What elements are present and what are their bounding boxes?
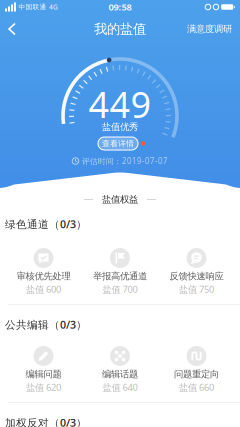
staticText: 举报高优通道 xyxy=(93,270,147,282)
staticText: 盐值优秀 xyxy=(102,121,138,133)
button[interactable]: 审核优先处理 xyxy=(5,248,82,295)
button[interactable]: 满意度调研 xyxy=(187,23,240,35)
staticText: 满意度调研 xyxy=(187,23,232,35)
staticText: 盐值 750 xyxy=(179,283,214,295)
staticText: 加权反对（0/3） xyxy=(5,415,87,427)
staticText: 公共编辑（0/3） xyxy=(5,317,87,332)
staticText: 编辑问题 xyxy=(25,368,61,380)
staticText: 09:58 xyxy=(108,1,131,13)
staticText: 449 xyxy=(88,80,151,128)
staticText: 盐值 640 xyxy=(102,381,137,393)
staticText: 中国联通 xyxy=(18,3,46,11)
staticText: 盐值权益 xyxy=(102,194,138,205)
staticText: 问题重定向 xyxy=(174,368,219,380)
staticText: 我的盐值 xyxy=(94,21,146,37)
staticText: 绿色通道（0/3） xyxy=(5,217,87,231)
button[interactable]: 编辑问题 xyxy=(5,346,82,393)
button[interactable]: 查看详情 xyxy=(98,137,138,150)
staticText: 盐值 620 xyxy=(26,381,61,393)
button[interactable]: 反馈快速响应 xyxy=(158,248,235,295)
button[interactable]: 举报高优通道 xyxy=(82,248,158,295)
staticText: 编辑话题 xyxy=(102,368,138,380)
button[interactable]: 问题重定向 xyxy=(158,346,235,393)
staticText: 查看详情 xyxy=(102,139,134,148)
staticText: 盐值 700 xyxy=(102,283,137,295)
staticText: 4G xyxy=(49,3,58,11)
staticText: 评估时间：2019-07-07 xyxy=(82,156,168,166)
staticText: 反馈快速响应 xyxy=(169,270,223,282)
button[interactable]: 返回 xyxy=(0,23,15,34)
staticText: 盐值 600 xyxy=(26,283,61,295)
staticText: 审核优先处理 xyxy=(16,270,70,282)
button[interactable]: 编辑话题 xyxy=(82,346,158,393)
staticText: 盐值 660 xyxy=(179,381,214,393)
